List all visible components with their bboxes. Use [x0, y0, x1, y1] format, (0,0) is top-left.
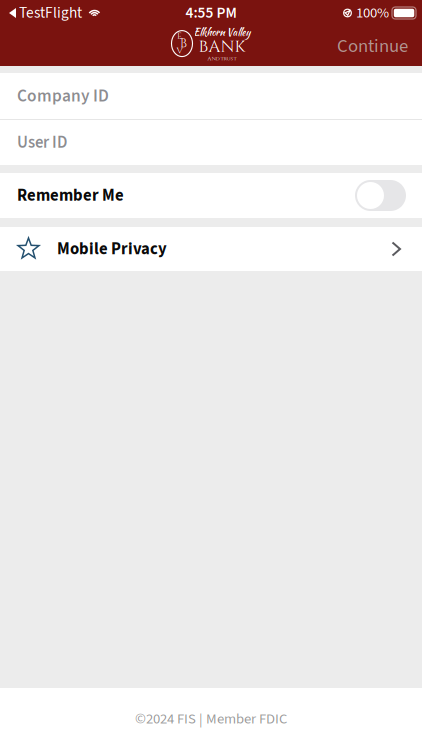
staticText: TestFlight — [19, 2, 82, 24]
staticText: Mobile Privacy — [57, 237, 167, 261]
staticText: Elkhorn Valley — [193, 25, 250, 39]
staticText: V — [176, 45, 182, 57]
button[interactable]: Continue — [323, 24, 422, 69]
staticText: B — [180, 35, 187, 52]
staticText: BANK — [198, 35, 245, 58]
staticText: 100% — [356, 3, 389, 23]
staticText: 4:55 PM — [185, 2, 236, 24]
staticText: Company ID — [17, 84, 109, 108]
button[interactable]: Mobile Privacy — [0, 227, 422, 271]
button[interactable]: Remember Me — [355, 180, 406, 211]
staticText: Continue — [337, 33, 408, 60]
staticText: AND TRUST — [207, 55, 236, 62]
staticText: User ID — [17, 131, 67, 154]
staticText: ©2024 FIS | Member FDIC — [135, 709, 287, 729]
staticText: E — [177, 30, 182, 42]
staticText: Remember Me — [17, 184, 124, 207]
